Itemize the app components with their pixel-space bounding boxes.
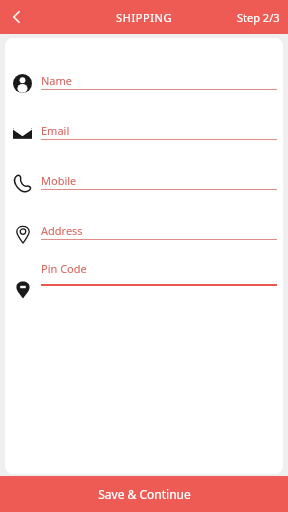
button[interactable]: Save & Continue <box>0 476 288 512</box>
staticText: Pin Code <box>41 261 87 276</box>
staticText: Name <box>41 73 73 88</box>
button[interactable]: Name <box>5 64 283 102</box>
staticText: Mobile <box>41 173 77 188</box>
button[interactable]: Mobile <box>5 164 283 202</box>
button[interactable]: Back <box>0 0 34 34</box>
staticText: Email <box>41 123 70 138</box>
staticText: Save & Continue <box>98 486 191 502</box>
button[interactable]: Email <box>5 114 283 152</box>
staticText: SHIPPING <box>116 10 173 25</box>
staticText: Step 2/3 <box>237 10 280 25</box>
button[interactable]: Pin Code <box>5 260 283 298</box>
button[interactable]: Address <box>5 214 283 252</box>
staticText: Address <box>41 223 83 238</box>
